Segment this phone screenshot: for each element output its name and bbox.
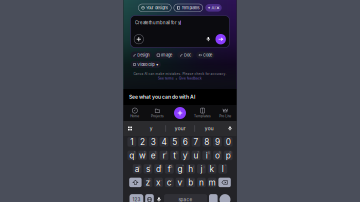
staticText: i (206, 150, 208, 160)
button[interactable] (160, 137, 168, 147)
button[interactable]: Code (196, 52, 214, 59)
button[interactable]: " (218, 164, 227, 174)
staticText: Image (161, 53, 172, 57)
button[interactable]: your (165, 121, 194, 136)
staticText: space (179, 197, 193, 202)
button[interactable]: Design (130, 52, 152, 59)
staticText: $ (160, 165, 162, 168)
button[interactable]: Pro Lite (214, 108, 236, 118)
button[interactable]: Create (169, 107, 191, 119)
staticText: v (177, 177, 182, 187)
button[interactable] (224, 137, 233, 147)
button[interactable]: See terms (158, 76, 174, 80)
button[interactable]: Image (154, 52, 175, 59)
button[interactable]: - (154, 178, 163, 187)
button[interactable]: 3 (149, 151, 158, 160)
button[interactable]: Emoji keyboard (123, 121, 136, 136)
button[interactable]: 4 (160, 151, 168, 160)
staticText: : (214, 178, 215, 182)
button[interactable]: 1 (127, 151, 136, 160)
staticText: Templates (182, 5, 200, 10)
staticText: 6 (183, 137, 188, 147)
button[interactable]: Give feedback (179, 76, 202, 80)
staticText: See what you can do with AI (129, 94, 195, 100)
button[interactable]: 9 (213, 151, 222, 160)
button[interactable]: you (194, 121, 223, 136)
button[interactable]: ) (197, 164, 206, 174)
staticText: 1 (134, 151, 135, 155)
staticText: AI (212, 5, 216, 10)
button[interactable]: 2 (138, 151, 147, 160)
staticText: d (156, 164, 161, 174)
button[interactable] (213, 137, 222, 147)
button[interactable]: # (143, 164, 152, 174)
staticText: b (188, 177, 193, 187)
button[interactable]: @ (133, 164, 142, 174)
button[interactable]: + (165, 178, 174, 187)
button[interactable]: * (176, 164, 184, 174)
button[interactable]: Dictate (156, 194, 162, 202)
staticText: 4 (165, 151, 167, 155)
button[interactable]: Add attachment (134, 34, 143, 44)
button[interactable] (149, 137, 158, 147)
staticText: Canva AI can make mistakes. Please check… (133, 72, 226, 76)
button[interactable] (202, 137, 211, 147)
button[interactable]: y (136, 121, 165, 136)
staticText: n (199, 177, 204, 187)
button[interactable]: Scribble (219, 194, 230, 202)
button[interactable]: Doc (177, 52, 194, 59)
button[interactable]: = (176, 178, 184, 187)
button[interactable]: Projects (146, 108, 169, 118)
button[interactable] (170, 137, 179, 147)
staticText: 5 (176, 151, 178, 155)
staticText: p (226, 150, 231, 160)
button[interactable]: Dictate (223, 121, 236, 136)
staticText: 0 (229, 151, 231, 155)
staticText: Video clip ▾ (137, 62, 158, 67)
button[interactable]: Home (123, 108, 146, 118)
staticText: e (151, 150, 156, 160)
button[interactable]: 6 (181, 151, 190, 160)
button[interactable]: 5 (170, 151, 179, 160)
staticText: 4 (161, 137, 166, 147)
button[interactable]: 7 (192, 151, 200, 160)
button[interactable]: 8 (202, 151, 211, 160)
staticText: 8 (204, 137, 209, 147)
staticText: % (148, 178, 151, 182)
button[interactable]: $ (154, 164, 163, 174)
staticText: f (168, 164, 171, 174)
button[interactable]: & (165, 164, 174, 174)
staticText: m (209, 177, 216, 187)
button[interactable]: Your designs (138, 4, 171, 12)
button[interactable] (138, 137, 147, 147)
button[interactable]: Close AI (205, 4, 222, 12)
button[interactable]: Delete (218, 178, 231, 187)
button[interactable]: Video clip ▾ (130, 61, 161, 68)
button[interactable]: Shift (129, 178, 142, 187)
button[interactable]: 123 (129, 194, 143, 202)
staticText: ) (204, 165, 205, 168)
staticText: 7 (197, 151, 199, 155)
button[interactable]: ( (186, 164, 195, 174)
button[interactable]: Send (215, 34, 226, 44)
staticText: h (188, 164, 193, 174)
button[interactable]: / (186, 178, 195, 187)
staticText: x (156, 177, 161, 187)
button[interactable]: 0 (224, 151, 233, 160)
staticText: Templates (194, 114, 211, 118)
button[interactable] (192, 137, 200, 147)
button[interactable]: Templates (191, 108, 214, 118)
button[interactable]: : (208, 178, 216, 187)
button[interactable]: ; (197, 178, 206, 187)
button[interactable] (127, 137, 136, 147)
button[interactable] (181, 137, 190, 147)
button[interactable]: Next keyboard (145, 194, 154, 202)
button[interactable]: % (143, 178, 152, 187)
staticText: j (200, 164, 202, 174)
button[interactable]: Return (209, 194, 218, 202)
button[interactable]: ' (208, 164, 216, 174)
button[interactable]: Templates (174, 4, 203, 12)
button[interactable]: Dictate (204, 34, 213, 44)
staticText: w (139, 150, 146, 160)
button[interactable]: space (164, 194, 207, 202)
